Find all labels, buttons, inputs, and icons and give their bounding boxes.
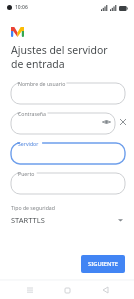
button[interactable]: Tipo de seguridad — [0, 202, 134, 227]
button[interactable]: SIGUIENTE — [81, 255, 125, 273]
staticText: Ajustes del servidor de entrada — [11, 43, 118, 71]
staticText: STARTTLS — [11, 215, 45, 225]
button[interactable]: Nombre de usuario — [11, 79, 125, 104]
button[interactable]: Atrás — [97, 282, 113, 298]
staticText: 10:06 — [15, 4, 28, 11]
button[interactable]: Puerto — [11, 169, 125, 194]
button[interactable]: Inicio — [59, 282, 75, 298]
button[interactable]: Servidor — [11, 139, 125, 164]
button[interactable]: Aplicaciones recientes — [22, 282, 38, 298]
staticText: Servidor — [18, 140, 39, 147]
button[interactable]: Contraseña — [11, 109, 115, 134]
staticText: Tipo de seguridad — [11, 204, 55, 211]
button[interactable]: Mostrar contraseña — [101, 117, 111, 127]
staticText: Nombre de usuario — [18, 80, 66, 87]
staticText: Puerto — [18, 170, 35, 177]
button[interactable]: Borrar contraseña — [117, 116, 129, 128]
staticText: Contraseña — [18, 110, 46, 117]
staticText: SIGUIENTE — [88, 260, 118, 268]
